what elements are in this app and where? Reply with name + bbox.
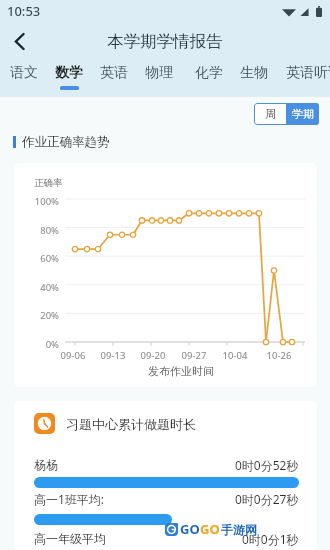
staticText: 10-26 [266, 349, 292, 362]
staticText: 100% [14, 195, 59, 208]
button[interactable]: 语文 [10, 60, 38, 97]
staticText: 物理 [145, 64, 173, 82]
staticText: 正确率 [34, 177, 63, 189]
button[interactable]: 物理 [145, 60, 173, 97]
staticText: 化学 [195, 64, 223, 82]
staticText: 手游网 [221, 522, 257, 537]
staticText: 英语听说 [286, 64, 330, 82]
staticText: 60% [14, 252, 59, 265]
staticText: 0时0分27秒 [235, 491, 299, 507]
staticText: 习题中心累计做题时长 [66, 416, 196, 432]
button[interactable]: Back [0, 22, 38, 60]
staticText: 0时0分1秒 [242, 531, 299, 547]
staticText: 80% [14, 224, 59, 237]
button[interactable]: 生物 [240, 60, 268, 97]
staticText: 本学期学情报告 [107, 31, 223, 52]
button[interactable]: 数学 [55, 60, 83, 97]
staticText: 0时0分52秒 [235, 457, 299, 473]
staticText: 09-06 [60, 349, 86, 362]
staticText: 语文 [10, 64, 38, 82]
button[interactable]: 英语 [100, 60, 128, 97]
button[interactable]: 学期 [286, 103, 319, 125]
staticText: 0% [14, 338, 59, 351]
staticText: 数学 [55, 64, 83, 82]
staticText: 高一年级平均 [34, 531, 106, 546]
button[interactable]: 英语听说 [285, 60, 330, 97]
staticText: 学期 [292, 107, 314, 121]
staticText: 发布作业时间 [148, 364, 214, 378]
staticText: GO [200, 520, 220, 538]
staticText: 20% [14, 309, 59, 322]
staticText: 10:53 [7, 2, 41, 20]
staticText: 09-27 [181, 349, 207, 362]
staticText: 40% [14, 281, 59, 294]
staticText: 英语 [100, 64, 128, 82]
staticText: 作业正确率趋势 [22, 134, 110, 150]
staticText: 杨杨 [34, 457, 58, 472]
staticText: 周 [265, 107, 276, 121]
staticText: 09-20 [140, 349, 166, 362]
staticText: 生物 [240, 64, 268, 82]
button[interactable]: 化学 [195, 60, 223, 97]
staticText: GO [180, 520, 200, 538]
staticText: 高一1班平均: [34, 491, 105, 507]
button[interactable]: 周 [254, 103, 286, 125]
staticText: 09-13 [100, 349, 126, 362]
staticText: 10-04 [222, 349, 248, 362]
